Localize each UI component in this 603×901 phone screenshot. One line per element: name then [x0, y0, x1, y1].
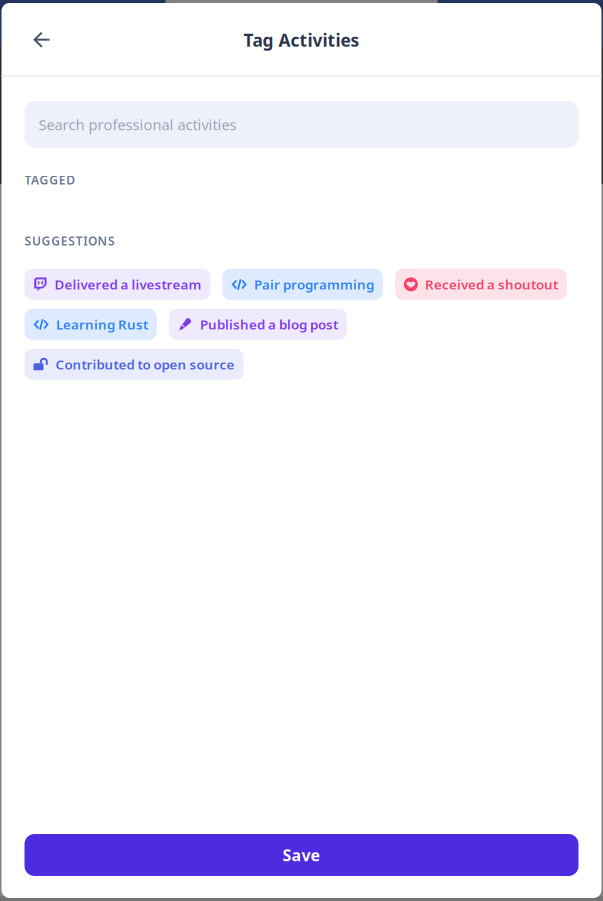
button[interactable]: Back [23, 21, 60, 59]
staticText: Published a blog post [200, 315, 338, 333]
staticText: SUGGESTIONS [24, 233, 115, 249]
staticText: Save [282, 844, 320, 866]
staticText: Received a shoutout [425, 275, 558, 293]
staticText: TAGGED [24, 172, 75, 188]
button[interactable]: Published a blog post [169, 309, 347, 340]
staticText: Pair programming [254, 275, 374, 293]
staticText: Tag Activities [243, 28, 359, 51]
button[interactable]: Pair programming [222, 269, 383, 300]
staticText: Learning Rust [56, 315, 148, 333]
button[interactable]: Search professional activities [24, 101, 578, 148]
staticText: Search professional activities [38, 115, 236, 134]
button[interactable]: Received a shoutout [395, 269, 567, 300]
button[interactable]: Learning Rust [24, 309, 157, 340]
button[interactable]: Save [24, 834, 578, 876]
button[interactable]: Delivered a livestream [24, 269, 210, 300]
button[interactable]: Contributed to open source [24, 349, 243, 380]
staticText: Contributed to open source [55, 355, 234, 373]
staticText: Delivered a livestream [54, 275, 201, 293]
